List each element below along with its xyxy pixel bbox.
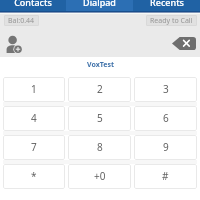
- button[interactable]: Recents: [133, 0, 200, 12]
- button[interactable]: Bal:0.44: [4, 15, 39, 26]
- staticText: 7: [31, 140, 37, 154]
- button[interactable]: 3: [134, 77, 197, 102]
- button[interactable]: *: [3, 164, 65, 189]
- button[interactable]: 2: [68, 77, 131, 102]
- staticText: 2: [97, 82, 103, 96]
- staticText: 8: [97, 140, 103, 154]
- button[interactable]: Backspace: [172, 37, 196, 50]
- button[interactable]: Ready to Call: [146, 15, 197, 26]
- staticText: Dialpad: [83, 0, 116, 8]
- button[interactable]: 9: [134, 135, 197, 160]
- staticText: 5: [97, 111, 103, 125]
- button[interactable]: 5: [68, 106, 131, 131]
- button[interactable]: 7: [3, 135, 65, 160]
- staticText: +0: [94, 169, 106, 183]
- button[interactable]: Dialpad: [66, 0, 133, 12]
- staticText: *: [31, 169, 37, 183]
- staticText: VoxTest: [87, 60, 114, 70]
- button[interactable]: 6: [134, 106, 197, 131]
- button[interactable]: 8: [68, 135, 131, 160]
- staticText: 6: [163, 111, 169, 125]
- button[interactable]: #: [134, 164, 197, 189]
- staticText: Recents: [150, 0, 184, 8]
- staticText: Contacts: [14, 0, 52, 8]
- button[interactable]: 1: [3, 77, 65, 102]
- staticText: 3: [163, 82, 169, 96]
- button[interactable]: 4: [3, 106, 65, 131]
- staticText: Ready to Call: [150, 16, 193, 26]
- staticText: Bal:0.44: [8, 16, 35, 26]
- staticText: 1: [31, 82, 37, 96]
- button[interactable]: Contacts: [0, 0, 66, 12]
- staticText: #: [162, 169, 169, 183]
- staticText: 4: [31, 111, 37, 125]
- staticText: 9: [163, 140, 169, 154]
- button[interactable]: Add contact: [6, 35, 21, 53]
- button[interactable]: +0: [68, 164, 131, 189]
